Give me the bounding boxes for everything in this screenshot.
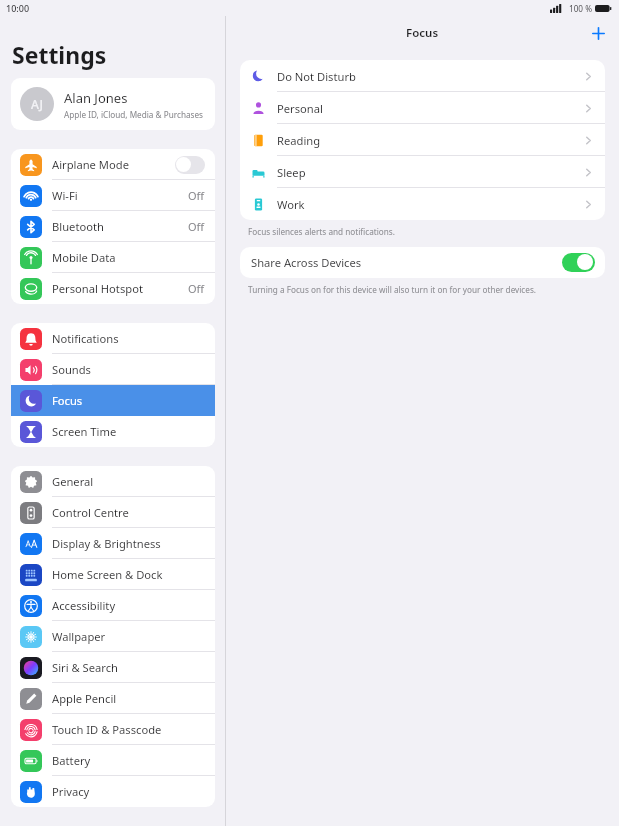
- staticText: Display & Brightness: [52, 536, 161, 551]
- staticText: Airplane Mode: [52, 157, 129, 172]
- staticText: Mobile Data: [52, 250, 116, 265]
- staticText: General: [52, 474, 94, 489]
- staticText: AJ: [31, 96, 43, 112]
- staticText: Turning a Focus on for this device will …: [248, 284, 537, 295]
- staticText: Control Centre: [52, 505, 129, 520]
- button[interactable]: Personal Hotspot: [11, 273, 215, 304]
- staticText: Focus: [52, 393, 83, 408]
- button[interactable]: Screen Time: [11, 416, 215, 447]
- button[interactable]: Home Screen & Dock: [11, 559, 215, 590]
- staticText: Bluetooth: [52, 219, 104, 234]
- staticText: Siri & Search: [52, 660, 118, 675]
- staticText: Home Screen & Dock: [52, 567, 163, 582]
- button[interactable]: Do Not Disturb: [240, 60, 605, 92]
- button[interactable]: On: [562, 253, 595, 272]
- staticText: Apple ID, iCloud, Media & Purchases: [64, 109, 203, 120]
- button[interactable]: Add Focus: [585, 20, 611, 46]
- staticText: Focus silences alerts and notifications.: [248, 226, 395, 237]
- button[interactable]: Privacy: [11, 776, 215, 807]
- staticText: Share Across Devices: [251, 255, 362, 270]
- staticText: Screen Time: [52, 424, 117, 439]
- button[interactable]: Reading: [240, 124, 605, 156]
- button[interactable]: Notifications: [11, 323, 215, 354]
- button[interactable]: Focus: [11, 385, 215, 416]
- button[interactable]: Control Centre: [11, 497, 215, 528]
- staticText: Apple Pencil: [52, 691, 117, 706]
- staticText: Accessibility: [52, 598, 116, 613]
- button[interactable]: Accessibility: [11, 590, 215, 621]
- staticText: Off: [188, 219, 205, 234]
- button[interactable]: Share Across Devices: [240, 247, 605, 278]
- staticText: Settings: [12, 39, 107, 70]
- button[interactable]: Sleep: [240, 156, 605, 188]
- staticText: 100 %: [569, 3, 592, 14]
- staticText: Focus: [406, 25, 439, 41]
- button[interactable]: General: [11, 466, 215, 497]
- staticText: Off: [188, 188, 205, 203]
- button[interactable]: Battery: [11, 745, 215, 776]
- staticText: Sounds: [52, 362, 91, 377]
- staticText: 10:00: [6, 2, 30, 14]
- button[interactable]: Work: [240, 188, 605, 220]
- button[interactable]: Sounds: [11, 354, 215, 385]
- staticText: Wi-Fi: [52, 188, 78, 203]
- staticText: Wallpaper: [52, 629, 106, 644]
- staticText: Personal: [277, 101, 323, 116]
- button[interactable]: Airplane Mode: [11, 149, 215, 180]
- button[interactable]: Touch ID & Passcode: [11, 714, 215, 745]
- staticText: Touch ID & Passcode: [52, 722, 162, 737]
- staticText: Privacy: [52, 784, 90, 799]
- button[interactable]: Apple Pencil: [11, 683, 215, 714]
- staticText: Reading: [277, 133, 321, 148]
- staticText: Sleep: [277, 165, 306, 180]
- staticText: Do Not Disturb: [277, 69, 356, 84]
- staticText: Off: [188, 281, 205, 296]
- button[interactable]: Mobile Data: [11, 242, 215, 273]
- staticText: Battery: [52, 753, 91, 768]
- staticText: Work: [277, 197, 305, 212]
- button[interactable]: AJ: [11, 78, 215, 130]
- button[interactable]: Bluetooth: [11, 211, 215, 242]
- button[interactable]: Wi-Fi: [11, 180, 215, 211]
- button[interactable]: Siri & Search: [11, 652, 215, 683]
- staticText: Alan Jones: [64, 89, 128, 107]
- button[interactable]: Wallpaper: [11, 621, 215, 652]
- staticText: Personal Hotspot: [52, 281, 143, 296]
- button[interactable]: Personal: [240, 92, 605, 124]
- staticText: Notifications: [52, 331, 119, 346]
- button[interactable]: Display & Brightness: [11, 528, 215, 559]
- button[interactable]: Off: [175, 156, 205, 174]
